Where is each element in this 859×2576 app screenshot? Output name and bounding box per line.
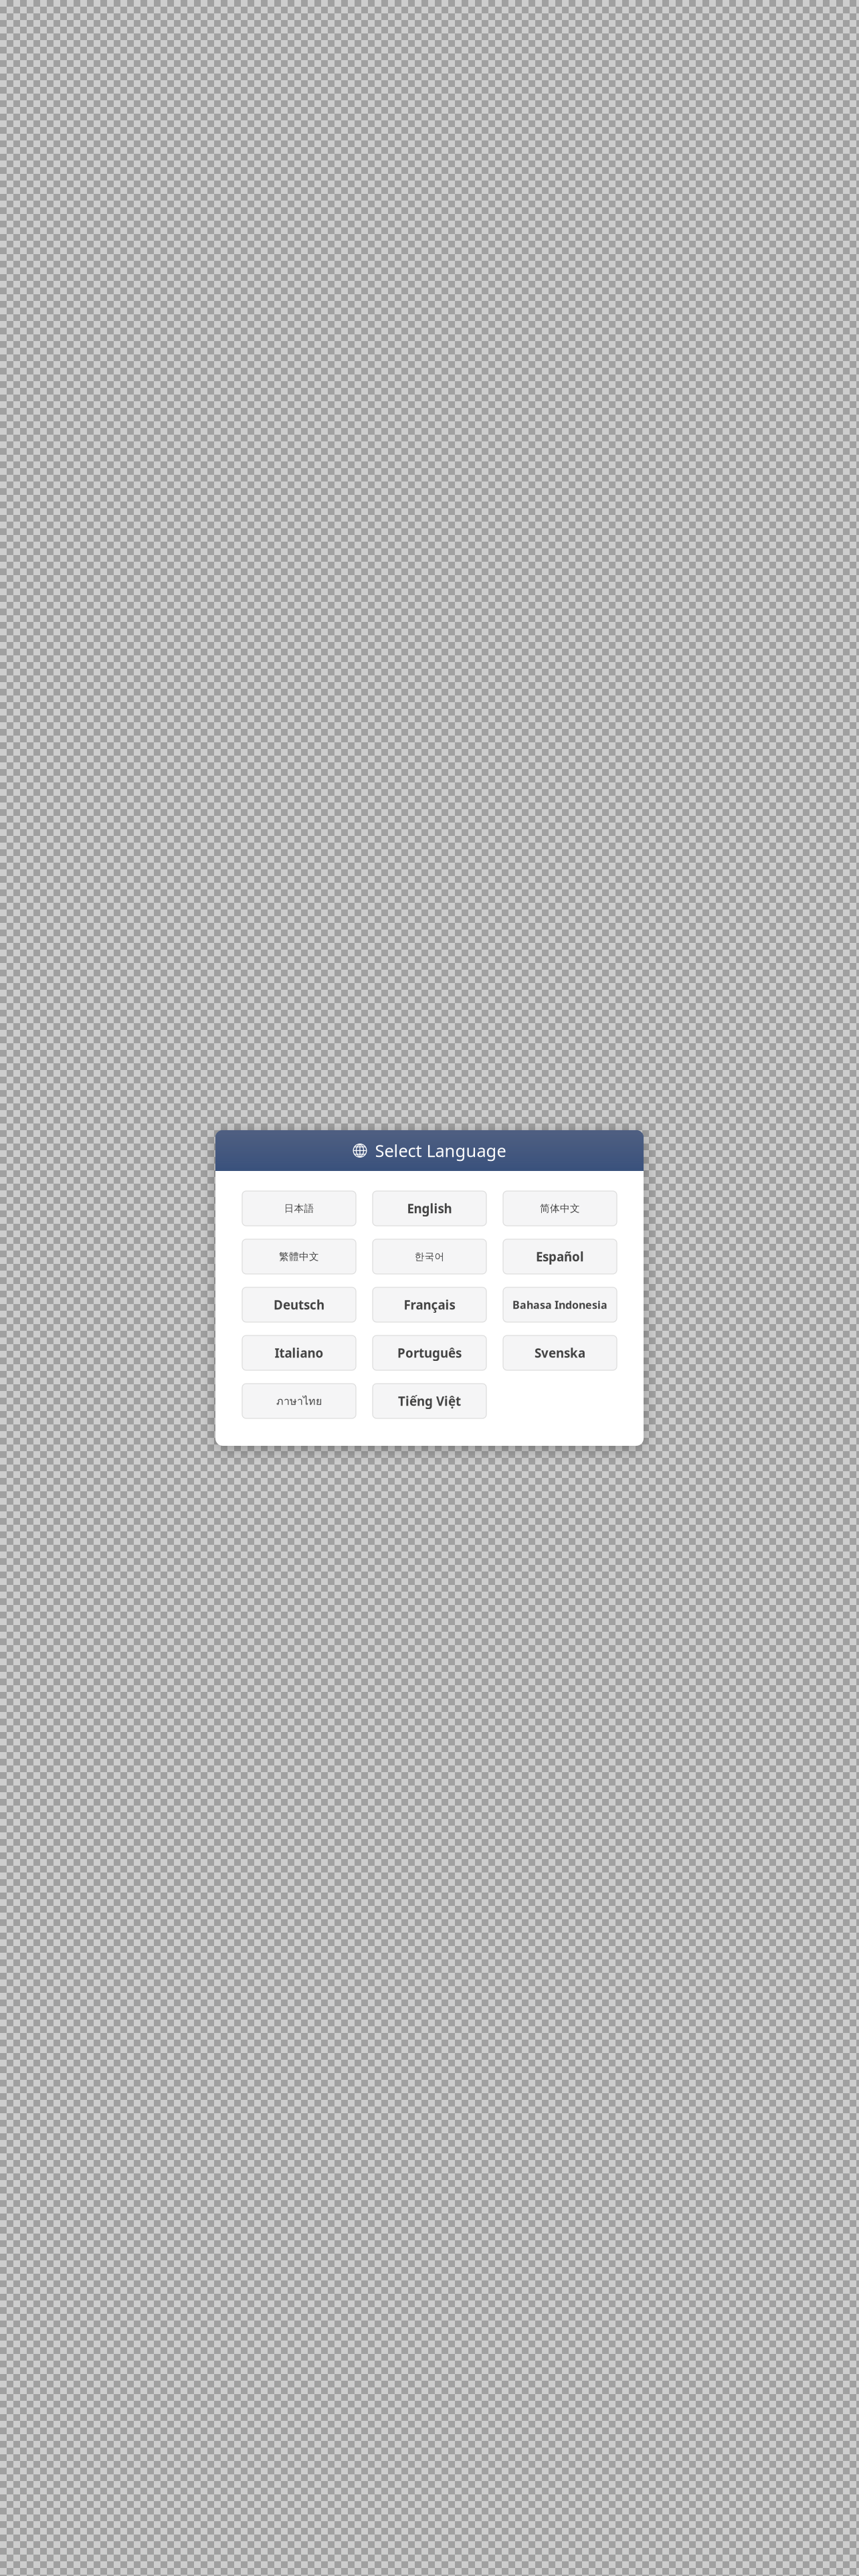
- staticText: ภาษาไทย: [276, 1393, 322, 1409]
- staticText: English: [407, 1200, 452, 1217]
- staticText: 繁體中文: [279, 1251, 319, 1263]
- button[interactable]: English: [373, 1191, 486, 1226]
- button[interactable]: Bahasa Indonesia: [503, 1287, 617, 1322]
- staticText: Svenska: [535, 1345, 585, 1361]
- staticText: Bahasa Indonesia: [512, 1298, 607, 1312]
- button[interactable]: 한국어: [373, 1239, 486, 1274]
- button[interactable]: Español: [503, 1239, 617, 1274]
- button[interactable]: Svenska: [503, 1335, 617, 1370]
- button[interactable]: Português: [373, 1335, 486, 1370]
- button[interactable]: Français: [373, 1287, 486, 1322]
- staticText: Italiano: [275, 1345, 323, 1361]
- button[interactable]: Italiano: [242, 1335, 356, 1370]
- staticText: 简体中文: [540, 1202, 580, 1214]
- staticText: Deutsch: [274, 1296, 324, 1313]
- button[interactable]: Tiếng Việt: [373, 1384, 486, 1418]
- staticText: Español: [536, 1248, 584, 1265]
- button[interactable]: 日本語: [242, 1191, 356, 1226]
- staticText: Select Language: [375, 1139, 506, 1162]
- staticText: Français: [404, 1296, 455, 1313]
- button[interactable]: ภาษาไทย: [242, 1384, 356, 1418]
- button[interactable]: 繁體中文: [242, 1239, 356, 1274]
- button[interactable]: 简体中文: [503, 1191, 617, 1226]
- button[interactable]: Deutsch: [242, 1287, 356, 1322]
- staticText: Tiếng Việt: [398, 1393, 461, 1409]
- staticText: Português: [397, 1345, 462, 1361]
- staticText: 日本語: [284, 1202, 314, 1214]
- staticText: 한국어: [414, 1251, 445, 1263]
